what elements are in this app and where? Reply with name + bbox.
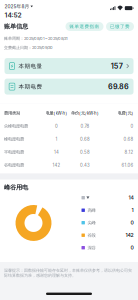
staticText: 0.78	[80, 123, 89, 129]
staticText: 1	[55, 136, 57, 142]
staticText: 温馨提示：因数据传输可能存在延时，本账单仅供参考，请以供电公司实际结算数据为准，…	[4, 268, 132, 278]
button[interactable]: 本期电费	[4, 79, 133, 95]
staticText: 0.43	[80, 162, 90, 168]
staticText: 电量(kW·h)	[45, 110, 67, 116]
staticText: 尖峰	[87, 220, 95, 225]
staticText: 谷电度电费	[4, 162, 24, 168]
button[interactable]: 本期电量	[4, 58, 133, 74]
staticText: 0	[130, 123, 133, 129]
staticText: 142	[125, 232, 133, 238]
button[interactable]: 已缴了费	[106, 22, 134, 31]
staticText: 0	[130, 220, 133, 226]
staticText: 0.68	[123, 136, 133, 142]
staticText: 账单周期：2025/08/01~2025/08/31	[4, 36, 68, 41]
staticText: 69.86	[108, 82, 129, 91]
staticText: 账单退费指南	[69, 24, 99, 29]
staticText: 0	[130, 245, 133, 251]
staticText: 谷段	[87, 232, 95, 238]
staticText: 0	[55, 123, 58, 129]
staticText: 14	[54, 149, 59, 155]
staticText: 尖峰电度电费	[4, 123, 28, 129]
staticText: 峰谷用电	[4, 184, 28, 191]
staticText: 本期电量	[18, 63, 42, 70]
button[interactable]: 账单退费指南	[65, 22, 103, 31]
staticText: 深谷	[87, 245, 95, 250]
staticText: 电费(元)	[117, 110, 133, 116]
staticText: 已缴了费	[110, 24, 130, 29]
staticText: 0.68	[80, 136, 90, 142]
staticText: 157	[111, 62, 123, 70]
staticText: 平电度电费	[4, 149, 24, 155]
staticText: 1	[131, 207, 133, 213]
staticText: 高峰	[87, 207, 95, 213]
staticText: 账单信息	[4, 23, 28, 30]
staticText: 14:52	[4, 11, 21, 19]
staticText: 8.12	[124, 149, 133, 155]
staticText: 142	[52, 162, 60, 168]
staticText: 单价(元/kW·h)	[71, 110, 99, 116]
staticText: 61.06	[121, 162, 133, 168]
staticText: 0.58	[80, 149, 90, 155]
staticText: 峰电度电费	[4, 136, 24, 142]
staticText: 费用类别	[4, 110, 20, 116]
staticText: 交费截止日期：2025/09/30	[4, 45, 53, 50]
staticText: 本期电费	[18, 83, 42, 90]
staticText: 14	[128, 195, 133, 201]
staticText: 2025年8月	[4, 3, 29, 9]
